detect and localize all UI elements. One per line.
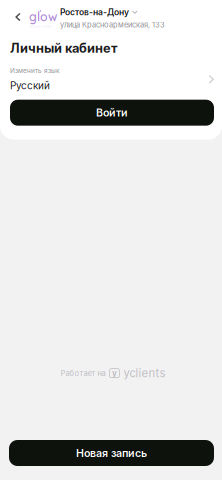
button[interactable]: Ростов-на-Дону [60,7,165,29]
button[interactable]: Новая запись [9,440,214,466]
button[interactable]: Назад [10,7,26,27]
button[interactable]: glow [29,6,57,28]
staticText: glow [29,9,57,24]
staticText: Личный кабинет [10,40,118,56]
staticText: y [112,368,117,378]
staticText: Новая запись [76,446,147,459]
staticText: улица Красноармейская, 133 [60,20,165,29]
staticText: Русский [10,80,50,92]
staticText: yclients [123,366,165,380]
button[interactable]: Войти [10,100,214,126]
staticText: Ростов-на-Дону [60,7,129,17]
staticText: Работает на [60,368,105,378]
button[interactable]: Изменить язык [0,67,222,92]
staticText: Войти [96,106,128,119]
staticText: beauty studio [30,24,52,28]
staticText: Изменить язык [10,67,59,74]
